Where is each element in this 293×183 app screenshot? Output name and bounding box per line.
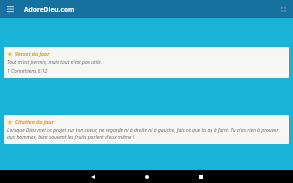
button[interactable]: Citation du jour: [4, 115, 289, 144]
staticText: Citation du jour: [15, 118, 54, 125]
button[interactable]: Open navigation menu: [3, 2, 17, 16]
staticText: 1 Corinthiens 6.12: [7, 68, 48, 75]
staticText: Lorsque Dieu met ce projet sur ton coeur…: [7, 127, 286, 141]
button[interactable]: Home: [135, 170, 159, 183]
button[interactable]: Recent apps: [189, 170, 213, 183]
button[interactable]: Verset du jour: [4, 47, 289, 78]
button[interactable]: Back: [81, 170, 105, 183]
staticText: Tout m'est permis, mais tout n'est pas u…: [7, 59, 103, 66]
button[interactable]: More options: [276, 2, 290, 16]
staticText: AdoreDieu.com: [24, 5, 75, 14]
staticText: Verset du jour: [15, 50, 50, 57]
